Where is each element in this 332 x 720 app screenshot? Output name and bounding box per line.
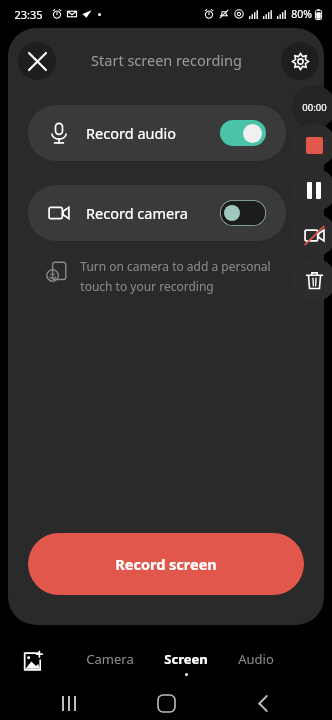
button[interactable]: Record camera (28, 185, 286, 241)
staticText: 80% (291, 7, 312, 21)
staticText: Camera (86, 650, 134, 668)
button[interactable]: Screen (162, 648, 210, 678)
button[interactable]: Record screen (28, 533, 304, 595)
button[interactable]: Turn off camera (292, 213, 332, 257)
staticText: touch to your recording (80, 278, 214, 294)
button[interactable]: Off (220, 200, 266, 226)
button[interactable]: Close (18, 42, 56, 80)
button[interactable]: Recents (52, 686, 86, 720)
button[interactable]: Audio (236, 648, 276, 678)
staticText: Record audio (86, 123, 176, 143)
staticText: 00:00 (302, 101, 327, 114)
staticText: Audio (238, 650, 274, 668)
staticText: Turn on camera to add a personal (80, 258, 271, 274)
button[interactable]: On (220, 120, 266, 146)
staticText: Screen (164, 650, 208, 668)
button[interactable]: Delete recording (292, 258, 332, 302)
button[interactable]: Pause (292, 168, 332, 212)
button[interactable]: Settings (281, 42, 319, 80)
staticText: Start screen recording (91, 50, 242, 70)
staticText: Record screen (115, 554, 217, 574)
staticText: 23:35 (14, 7, 43, 22)
button[interactable]: Add from gallery (18, 646, 48, 676)
button[interactable]: Camera (84, 648, 136, 678)
button[interactable]: Record audio (28, 105, 286, 161)
staticText: Record camera (86, 203, 188, 223)
button[interactable]: Home (149, 686, 183, 720)
button[interactable]: Stop recording (292, 123, 332, 167)
button[interactable]: Back (246, 686, 280, 720)
